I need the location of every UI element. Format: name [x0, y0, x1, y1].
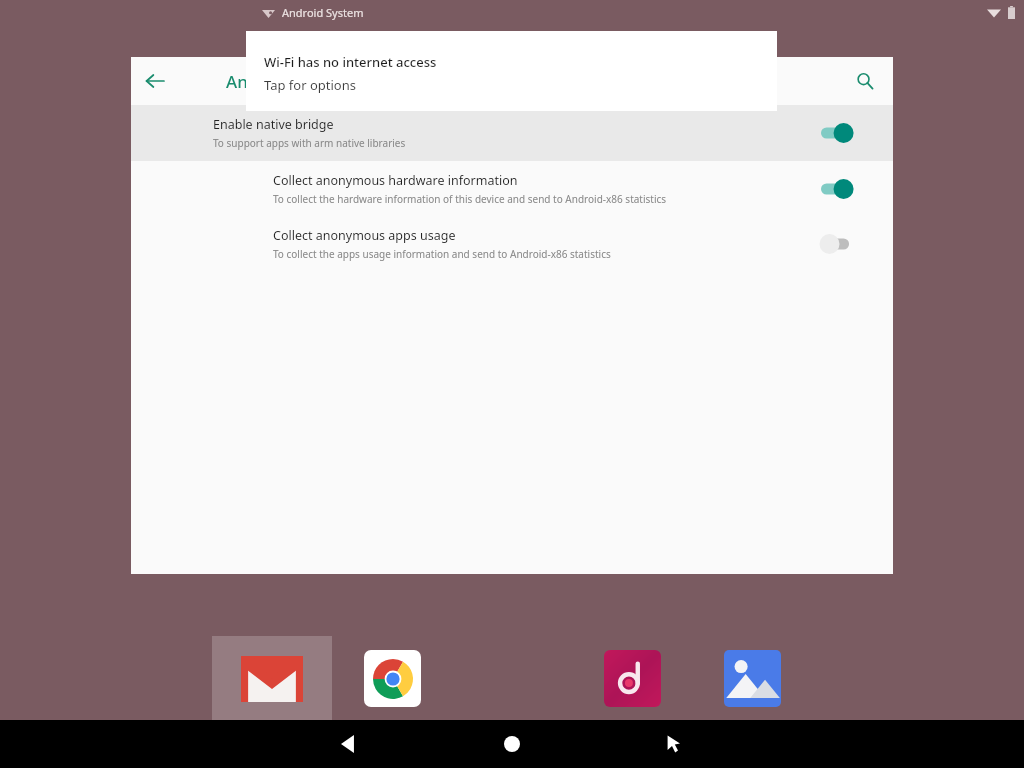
button[interactable]: Gmail [212, 636, 332, 721]
staticText: Enable native bridge [213, 116, 334, 133]
button[interactable]: Collect anonymous hardware information [131, 161, 893, 216]
staticText: Wi-Fi has no internet access [264, 53, 437, 71]
button[interactable]: Home [488, 720, 536, 768]
button[interactable]: Recents [650, 720, 698, 768]
button[interactable]: Back [131, 57, 179, 105]
staticText: Android-x86 options [226, 70, 391, 93]
button[interactable]: Chrome [364, 650, 421, 707]
button[interactable]: Search [841, 57, 889, 105]
button[interactable]: Enable native bridge [821, 109, 893, 157]
staticText: To collect the hardware information of t… [273, 192, 667, 206]
button[interactable]: Wi-Fi has no internet access [246, 31, 777, 111]
staticText: To support apps with arm native librarie… [213, 136, 406, 150]
button[interactable]: Enable native bridge [131, 105, 893, 161]
staticText: Tap for options [264, 76, 356, 94]
button[interactable]: Photos [724, 650, 781, 707]
button[interactable]: Back [326, 720, 374, 768]
staticText: Android System [282, 5, 364, 20]
button[interactable]: Music [604, 650, 661, 707]
staticText: Collect anonymous hardware information [273, 172, 518, 189]
button[interactable]: Collect anonymous hardware information [821, 165, 893, 213]
staticText: Collect anonymous apps usage [273, 227, 456, 244]
button[interactable]: Collect anonymous apps usage [131, 216, 893, 271]
button[interactable]: Collect anonymous apps usage [821, 220, 893, 268]
staticText: To collect the apps usage information an… [273, 247, 611, 261]
